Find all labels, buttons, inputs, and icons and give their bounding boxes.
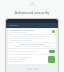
staticText: Advanced security [0,10,64,15]
button[interactable]: Enabled toggle [49,50,55,53]
button[interactable]: Status badge [8,29,56,34]
button[interactable]: Enabled toggle [8,49,56,54]
button[interactable] [8,43,56,48]
button[interactable]: Status badge [52,30,55,33]
button[interactable] [8,35,56,42]
button[interactable]: Confirm [8,55,56,64]
button[interactable]: Logo [26,2,39,7]
button[interactable]: Confirm [48,56,55,63]
